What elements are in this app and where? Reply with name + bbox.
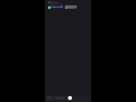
button[interactable]: Record [68,96,72,100]
staticText: Recei_e [48,1,59,5]
staticText: Tap Search o [47,96,68,100]
staticText: localh [51,4,64,9]
staticText: gorunsv [65,5,77,9]
